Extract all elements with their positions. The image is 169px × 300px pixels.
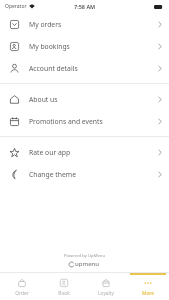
staticText: upmenu xyxy=(75,260,100,268)
button[interactable]: Account details xyxy=(0,57,169,79)
staticText: My orders xyxy=(29,20,62,29)
staticText: Operator xyxy=(5,3,27,10)
staticText: More xyxy=(142,290,154,297)
staticText: Change theme xyxy=(29,170,76,179)
staticText: Rate our app xyxy=(29,148,71,157)
staticText: My bookings xyxy=(29,42,70,51)
button[interactable]: More xyxy=(127,273,169,300)
button[interactable]: My orders xyxy=(0,13,169,35)
staticText: Powered by UpMenu xyxy=(64,253,105,259)
staticText: About us xyxy=(29,95,58,104)
button[interactable]: Book xyxy=(43,273,85,300)
button[interactable]: About us xyxy=(0,88,169,110)
button[interactable]: Order xyxy=(0,273,43,300)
button[interactable]: Rate our app xyxy=(0,141,169,163)
staticText: 7:58 AM xyxy=(74,3,96,10)
button[interactable]: Promotions and events xyxy=(0,110,169,132)
button[interactable]: Loyalty xyxy=(85,273,127,300)
staticText: Loyalty xyxy=(98,290,114,297)
button[interactable]: Change theme xyxy=(0,163,169,185)
staticText: Book xyxy=(58,290,70,297)
button[interactable]: My bookings xyxy=(0,35,169,57)
staticText: Account details xyxy=(29,64,78,73)
staticText: Promotions and events xyxy=(29,117,103,126)
staticText: Order xyxy=(15,290,29,297)
